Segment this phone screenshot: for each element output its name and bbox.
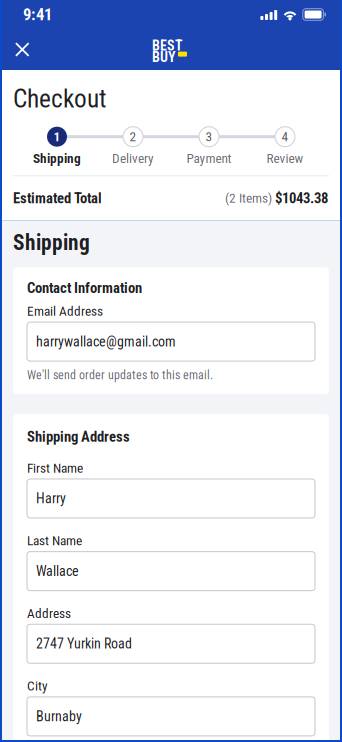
staticText: $1043.38 xyxy=(272,190,328,207)
staticText: Checkout xyxy=(13,84,106,114)
staticText: We'll send order updates to this email. xyxy=(27,368,213,382)
staticText: Wallace xyxy=(36,563,79,579)
staticText: City xyxy=(27,678,48,694)
staticText: Shipping xyxy=(33,151,81,166)
staticText: 2747 Yurkin Road xyxy=(36,635,132,652)
staticText: Delivery xyxy=(112,151,154,166)
staticText: Harry xyxy=(36,490,66,507)
staticText: 1 xyxy=(53,129,60,144)
staticText: Review xyxy=(266,151,303,166)
staticText: BUY xyxy=(152,49,176,65)
staticText: Shipping xyxy=(13,230,90,255)
staticText: Last Name xyxy=(27,533,82,549)
staticText: Shipping Address xyxy=(27,428,130,445)
button[interactable]: Close xyxy=(2,39,45,59)
staticText: 3 xyxy=(205,129,212,144)
staticText: Contact Information xyxy=(27,279,142,296)
staticText: 4 xyxy=(281,129,288,144)
staticText: First Name xyxy=(27,460,83,476)
staticText: BEST xyxy=(152,38,183,54)
staticText: 9:41 xyxy=(23,5,52,24)
staticText: (2 Items) xyxy=(225,190,272,206)
staticText: Payment xyxy=(186,151,231,166)
staticText: Burnaby xyxy=(36,708,82,725)
staticText: Email Address xyxy=(27,303,103,319)
staticText: Address xyxy=(27,606,71,621)
staticText: Estimated Total xyxy=(13,190,102,207)
staticText: 2 xyxy=(129,129,136,144)
staticText: harrywallace@gmail.com xyxy=(36,333,176,350)
